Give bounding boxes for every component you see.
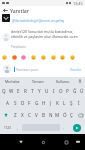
button[interactable]: Profile picture xyxy=(2,14,10,22)
button[interactable]: Ü xyxy=(78,85,85,97)
button[interactable]: Ö xyxy=(61,109,68,121)
button[interactable]: R xyxy=(22,85,29,97)
button[interactable]: X xyxy=(19,109,26,121)
staticText: Yanıtlarını xyxy=(11,45,26,49)
staticText: K xyxy=(56,100,59,106)
staticText: H xyxy=(42,100,46,106)
button[interactable]: Shift xyxy=(0,109,11,121)
staticText: I xyxy=(53,88,55,94)
staticText: Yanıtla xyxy=(70,67,81,72)
button[interactable]: Yanıtla xyxy=(69,65,82,74)
button[interactable]: L xyxy=(61,97,68,109)
button[interactable]: Emoji reaction xyxy=(51,55,56,60)
button[interactable]: Recent apps xyxy=(60,136,72,148)
button[interactable]: A xyxy=(3,97,11,109)
button[interactable]: F xyxy=(26,97,33,109)
staticText: M xyxy=(55,112,60,118)
button[interactable]: Z xyxy=(11,109,19,121)
button[interactable]: Emoji reaction xyxy=(60,55,65,60)
button[interactable]: T xyxy=(29,85,36,97)
staticText: E xyxy=(17,88,20,94)
staticText: Merhaba xyxy=(5,79,20,84)
staticText: Ç xyxy=(70,112,73,118)
staticText: D xyxy=(21,100,25,106)
staticText: Ö xyxy=(63,112,67,118)
button[interactable]: V xyxy=(33,109,40,121)
staticText: 13:45 xyxy=(73,1,83,6)
staticText: V xyxy=(35,112,38,118)
button[interactable]: Tamam xyxy=(25,77,50,85)
button[interactable]: İ xyxy=(75,97,82,109)
staticText: A xyxy=(6,100,9,106)
staticText: Yanıtınızı yazın xyxy=(16,67,39,71)
button[interactable]: Ç xyxy=(68,109,75,121)
button[interactable]: Merhaba xyxy=(0,77,25,85)
button[interactable]: Emoji reaction xyxy=(12,55,17,60)
button[interactable]: Ğ xyxy=(71,85,78,97)
button[interactable]: Emoji reaction xyxy=(2,55,7,60)
button[interactable]: U xyxy=(43,85,50,97)
button[interactable]: Ş xyxy=(68,97,75,109)
staticText: Yanıtlar xyxy=(10,7,29,14)
button[interactable]: Kullanıcı xyxy=(50,77,75,85)
staticText: Z xyxy=(14,112,17,118)
staticText: X xyxy=(21,112,24,118)
staticText: Ü xyxy=(80,88,84,94)
staticText: , xyxy=(17,125,19,130)
button[interactable]: Back xyxy=(0,6,10,14)
staticText: Ğ xyxy=(73,88,77,94)
button[interactable]: P xyxy=(64,85,71,97)
button[interactable]: ?123 xyxy=(0,121,14,134)
button[interactable]: Q xyxy=(0,85,8,97)
button[interactable]: Back xyxy=(15,136,27,148)
button[interactable]: J xyxy=(47,97,54,109)
button[interactable]: Emoji reaction xyxy=(21,55,26,60)
staticText: Tamam xyxy=(32,79,44,84)
button[interactable]: Y xyxy=(36,85,43,97)
staticText: P xyxy=(66,88,69,94)
staticText: C xyxy=(28,112,31,118)
staticText: ?123 xyxy=(4,126,11,130)
button[interactable]: I xyxy=(50,85,57,97)
button[interactable]: S xyxy=(11,97,19,109)
button[interactable]: K xyxy=(54,97,61,109)
staticText: N xyxy=(49,112,53,118)
staticText: @ilerisahibidegil @evren.vn.gehty xyxy=(12,18,65,22)
button[interactable]: C xyxy=(26,109,33,121)
staticText: devlet120 Sonuclari mutlu basladimiz, et… xyxy=(11,29,82,39)
button[interactable]: Voice input xyxy=(75,77,85,85)
button[interactable]: , xyxy=(14,121,22,134)
staticText: Kullanıcı xyxy=(56,79,70,84)
button[interactable]: Home xyxy=(37,136,49,148)
button[interactable]: H xyxy=(40,97,47,109)
staticText: S xyxy=(14,100,17,106)
staticText: Q xyxy=(2,88,6,94)
button[interactable]: Backspace xyxy=(75,109,85,121)
button[interactable]: O xyxy=(57,85,64,97)
button[interactable]: Hide keyboard xyxy=(72,136,84,148)
button[interactable]: M xyxy=(54,109,61,121)
staticText: T xyxy=(31,88,34,94)
button[interactable]: Emoji reaction xyxy=(70,55,75,60)
button[interactable]: Emoji reaction xyxy=(31,55,36,60)
button[interactable]: E xyxy=(15,85,22,97)
staticText: L xyxy=(63,100,66,106)
staticText: Y xyxy=(38,88,41,94)
button[interactable]: Emoji reaction xyxy=(41,55,46,60)
staticText: . xyxy=(63,125,65,130)
staticText: G xyxy=(35,100,39,106)
staticText: İ xyxy=(78,100,80,106)
staticText: W xyxy=(9,88,14,94)
staticText: U xyxy=(45,88,49,94)
staticText: Ş xyxy=(70,100,73,106)
button[interactable]: N xyxy=(47,109,54,121)
button[interactable]: D xyxy=(19,97,26,109)
staticText: J xyxy=(50,100,52,106)
button[interactable]: G xyxy=(33,97,40,109)
button[interactable]: W xyxy=(8,85,15,97)
button[interactable]: B xyxy=(40,109,47,121)
staticText: R xyxy=(24,88,27,94)
button[interactable]: Send xyxy=(73,124,81,132)
